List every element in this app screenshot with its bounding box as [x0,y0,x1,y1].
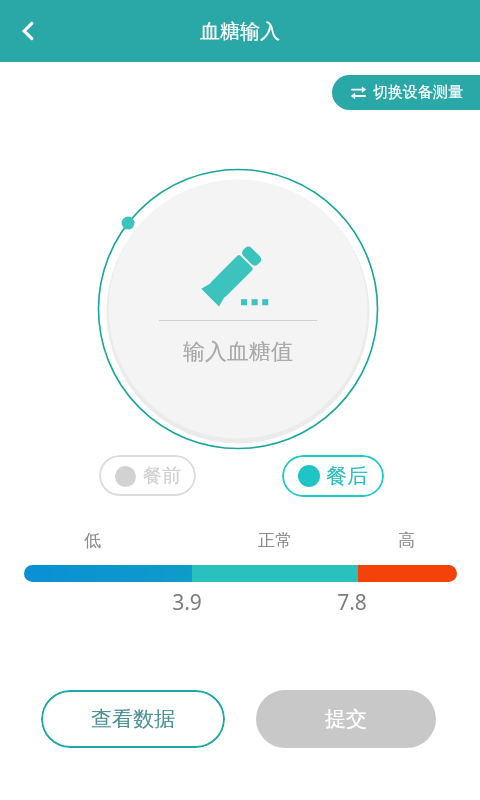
button[interactable]: 切换设备测量 [332,75,480,110]
staticText: 3.9 [172,588,202,617]
staticText: 低 [84,530,101,551]
staticText: 餐后 [326,463,368,489]
staticText: 7.8 [337,588,367,617]
staticText: 输入血糖值 [183,338,293,366]
button[interactable]: 餐前 [99,455,196,496]
staticText: 高 [398,530,415,551]
button[interactable]: 查看数据 [41,690,225,748]
staticText: 餐前 [143,464,181,488]
staticText: 血糖输入 [200,19,280,44]
button[interactable]: 提交 [256,690,436,748]
staticText: 提交 [325,706,367,732]
staticText: 正常 [258,530,292,551]
button[interactable]: 餐后 [282,455,384,497]
staticText: 切换设备测量 [373,83,463,102]
button[interactable]: Back [0,3,56,59]
staticText: 查看数据 [91,706,175,732]
button[interactable]: 输入血糖值 [97,168,379,450]
